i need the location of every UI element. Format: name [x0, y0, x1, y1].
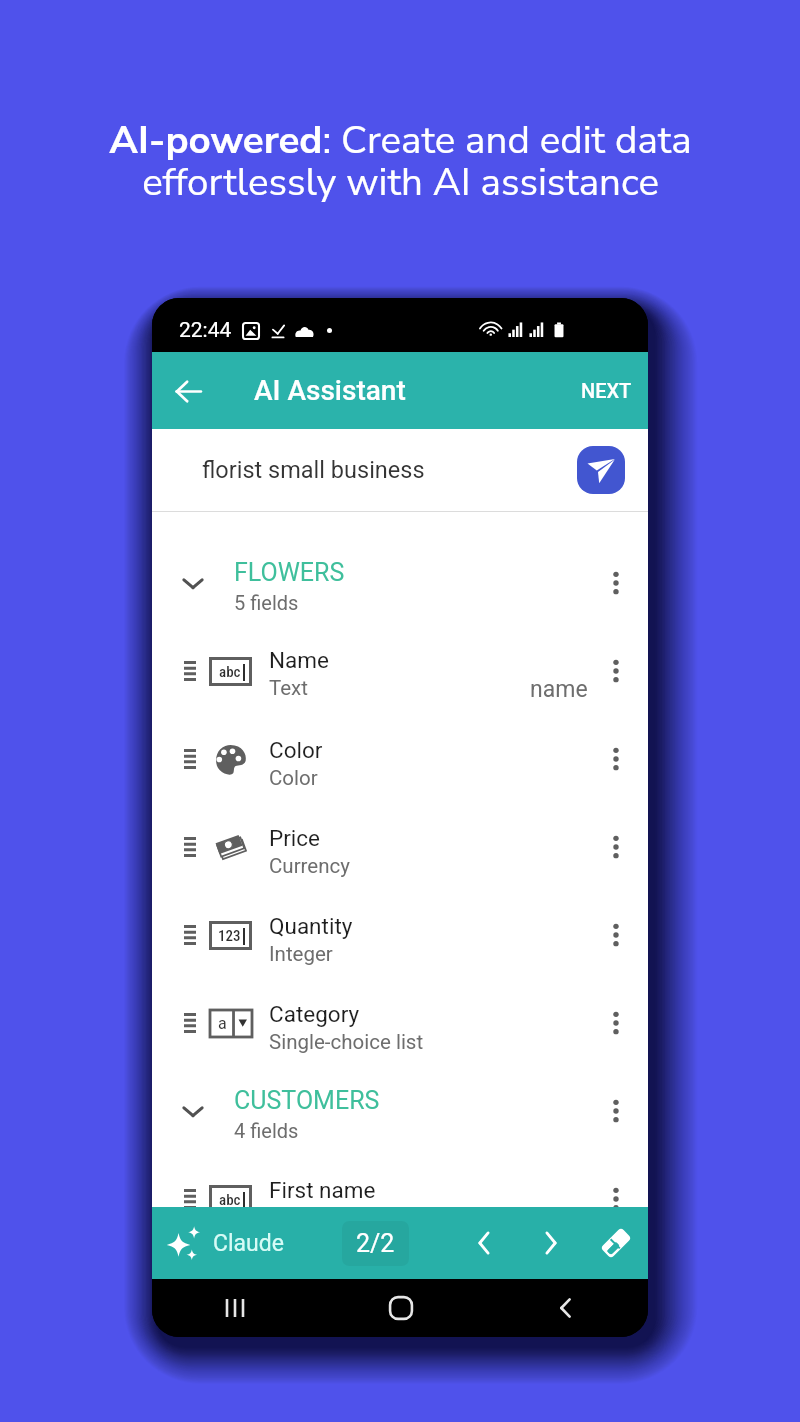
button[interactable]: abc [152, 1155, 648, 1207]
button[interactable]: Recent apps [152, 1279, 318, 1337]
button[interactable]: Home [318, 1279, 483, 1337]
button[interactable]: More options [584, 639, 648, 703]
button[interactable]: Back [483, 1279, 648, 1337]
button[interactable]: Next [524, 1217, 576, 1269]
button[interactable]: abc [152, 627, 648, 715]
button[interactable]: Previous [459, 1217, 511, 1269]
button[interactable]: Erase [590, 1217, 642, 1269]
staticText: CUSTOMERS [234, 1086, 380, 1115]
button[interactable]: Color [152, 715, 648, 803]
staticText: 4 fields [234, 1119, 299, 1142]
button[interactable]: CUSTOMERS [152, 1067, 648, 1155]
staticText: Quantity [269, 913, 353, 939]
button[interactable]: Price [152, 803, 648, 891]
staticText: Name [269, 647, 329, 673]
staticText: First name [269, 1177, 376, 1203]
button[interactable]: More options [584, 1079, 648, 1143]
button[interactable]: More options [584, 727, 648, 791]
staticText: 22:44 [179, 318, 232, 343]
button[interactable]: More options [584, 991, 648, 1055]
staticText: Claude [213, 1230, 284, 1257]
button[interactable]: More options [584, 815, 648, 879]
staticText: AI-powered: Create and edit data effortl… [109, 114, 692, 209]
staticText: Single-choice list [269, 1030, 424, 1054]
button[interactable]: FLOWERS [152, 539, 648, 627]
button[interactable]: Back [164, 367, 212, 415]
staticText: Price [269, 825, 320, 851]
staticText: 2/2 [356, 1229, 395, 1258]
button[interactable]: NEXT [565, 365, 648, 416]
button[interactable]: Claude [166, 1224, 284, 1262]
staticText: Color [269, 766, 318, 790]
staticText: florist small business [202, 456, 425, 484]
staticText: 123 [218, 927, 241, 945]
staticText: Color [269, 737, 323, 763]
staticText: abc [219, 663, 241, 681]
staticText: a [218, 1014, 227, 1033]
button[interactable]: More options [584, 551, 648, 615]
staticText: FLOWERS [234, 558, 345, 587]
staticText: Currency [269, 854, 350, 878]
staticText: Category [269, 1001, 360, 1027]
staticText: 5 fields [234, 591, 299, 614]
button[interactable]: More options [584, 903, 648, 967]
staticText: NEXT [581, 379, 632, 402]
staticText: name [530, 676, 588, 703]
staticText: AI Assistant [254, 374, 406, 407]
button[interactable]: 123 [152, 891, 648, 979]
button[interactable]: More options [584, 1167, 648, 1207]
staticText: Integer [269, 942, 333, 966]
button[interactable]: a [152, 979, 648, 1067]
staticText: abc [219, 1191, 241, 1207]
staticText: Text [269, 676, 308, 700]
button[interactable]: Send [577, 446, 625, 494]
